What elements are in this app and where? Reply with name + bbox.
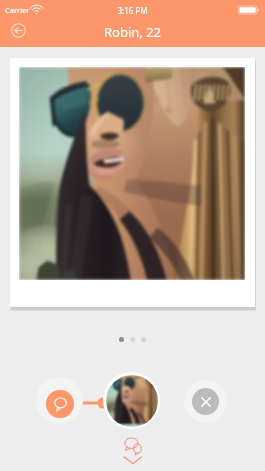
staticText: 3:16 PM <box>0 5 265 16</box>
button[interactable]: Dismiss <box>184 380 227 423</box>
button[interactable] <box>10 58 255 307</box>
button[interactable]: Open chat <box>120 434 146 467</box>
staticText: Robin, 22 <box>0 23 265 41</box>
button[interactable]: Robin profile photo <box>103 372 160 429</box>
button[interactable]: Back <box>11 23 26 38</box>
staticText: Carrier <box>5 5 30 15</box>
button[interactable]: Send message <box>36 377 83 424</box>
